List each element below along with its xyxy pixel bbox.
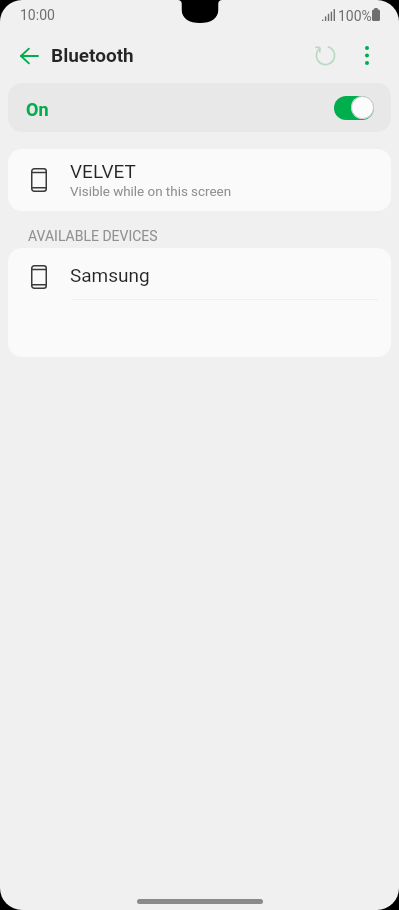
staticText: AVAILABLE DEVICES: [28, 228, 158, 244]
button[interactable]: VELVET: [8, 149, 391, 211]
staticText: 10:00: [20, 7, 55, 23]
button[interactable]: More options: [345, 33, 389, 77]
staticText: VELVET: [70, 160, 136, 182]
staticText: On: [26, 99, 49, 120]
staticText: 100%: [338, 8, 372, 24]
button[interactable]: Refresh: [303, 33, 347, 77]
button[interactable]: On: [8, 83, 391, 132]
button[interactable]: Samsung: [8, 251, 391, 303]
button[interactable]: Back: [6, 32, 53, 79]
staticText: Visible while on this screen: [70, 184, 232, 200]
staticText: Samsung: [70, 264, 150, 286]
staticText: Bluetooth: [51, 44, 134, 66]
